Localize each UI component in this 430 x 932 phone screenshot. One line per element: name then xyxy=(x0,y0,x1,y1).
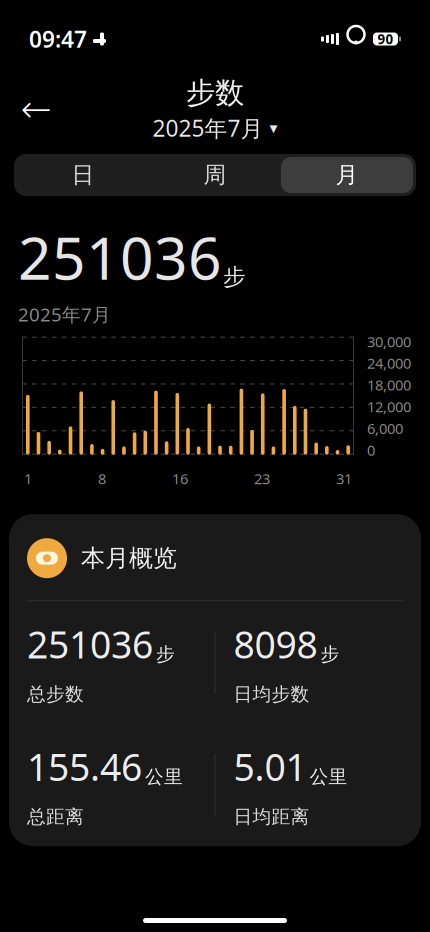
staticText: 总步数 xyxy=(27,683,84,706)
staticText: ← xyxy=(20,88,51,130)
button[interactable]: 周 xyxy=(149,157,281,193)
staticText: 09:47 xyxy=(29,24,87,54)
staticText: 日均步数 xyxy=(233,683,309,706)
staticText: 251036 xyxy=(27,619,153,669)
staticText: 步 xyxy=(223,263,246,291)
staticText: 155.46 xyxy=(27,742,142,791)
staticText: 1 xyxy=(24,469,32,488)
staticText: 公里 xyxy=(309,765,347,788)
staticText: 日 xyxy=(71,161,94,189)
button[interactable]: 2025年7月 xyxy=(152,113,277,143)
staticText: 251036 xyxy=(18,218,222,296)
staticText: 24,000 xyxy=(367,353,411,373)
staticText: 31 xyxy=(336,469,352,488)
staticText: 步 xyxy=(320,643,339,666)
staticText: 0 xyxy=(367,440,375,460)
staticText: 公里 xyxy=(145,765,183,788)
staticText: 30,000 xyxy=(367,332,411,351)
button[interactable]: Back xyxy=(14,87,58,131)
staticText: 90 xyxy=(377,30,393,48)
staticText: 8 xyxy=(98,469,106,488)
staticText: 步数 xyxy=(186,75,244,111)
staticText: ▾ xyxy=(269,119,277,137)
staticText: 本月概览 xyxy=(81,543,177,573)
staticText: 周 xyxy=(203,161,226,189)
staticText: 步 xyxy=(156,643,175,666)
staticText: 6,000 xyxy=(367,418,403,438)
staticText: 2025年7月 xyxy=(152,113,263,143)
button[interactable]: 日 xyxy=(17,157,149,193)
staticText: 5.01 xyxy=(233,742,306,791)
button[interactable]: 月 xyxy=(281,157,413,193)
staticText: 18,000 xyxy=(367,375,411,395)
staticText: 日均距离 xyxy=(233,805,309,828)
staticText: 8098 xyxy=(233,619,317,669)
staticText: 总距离 xyxy=(27,805,84,828)
staticText: 16 xyxy=(172,469,188,488)
staticText: 月 xyxy=(335,161,358,189)
staticText: 23 xyxy=(254,469,270,488)
staticText: 12,000 xyxy=(367,397,411,416)
staticText: 2025年7月 xyxy=(18,302,111,327)
